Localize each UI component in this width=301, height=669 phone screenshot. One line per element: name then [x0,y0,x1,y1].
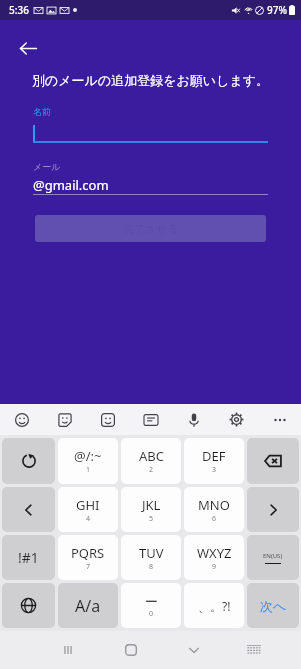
button[interactable]: Backspace [247,438,299,484]
button[interactable]: DEF [184,438,244,484]
button[interactable]: GIF [86,404,129,435]
staticText: 、。?! [198,598,231,614]
button[interactable]: Cursor right [247,487,299,532]
button[interactable]: 次へ [247,583,299,628]
staticText: 名前 [33,106,51,117]
staticText: 8 [149,562,154,572]
button[interactable]: JKL [121,487,181,532]
button[interactable]: WXYZ [184,535,244,580]
staticText: 1 [86,465,91,475]
button[interactable]: ー [121,583,181,628]
staticText: @/:~ [74,447,102,465]
button[interactable]: Undo [2,438,55,484]
button[interactable]: !#1 [2,535,55,580]
staticText: MNO [198,496,230,514]
staticText: GHI [76,496,100,514]
button[interactable]: Change language [2,583,55,628]
staticText: TUV [139,544,164,562]
staticText: !#1 [18,548,39,567]
button[interactable]: A/a [58,583,118,628]
staticText: 2 [149,465,154,475]
staticText: 0 [149,609,154,619]
button[interactable]: Cursor left [2,487,55,532]
staticText: 7 [86,562,91,572]
button[interactable]: Recents [36,631,99,669]
button[interactable]: MNO [184,487,244,532]
staticText: メール [33,161,61,172]
button[interactable]: @/:~ [58,438,118,484]
staticText: ABC [139,447,164,465]
button[interactable]: Stickers [43,404,86,435]
button[interactable] [33,122,268,141]
staticText: 4 [86,514,91,524]
button[interactable]: 、。?! [184,583,244,628]
button[interactable]: Settings [215,404,258,435]
staticText: EN(US) [263,552,283,560]
button[interactable]: More [258,404,301,435]
button[interactable]: Keyboard layout [225,631,282,669]
staticText: 5:36 [9,3,29,17]
staticText: DEF [202,447,226,465]
staticText: 別のメールの追加登録をお願いします。 [16,72,285,88]
button[interactable]: Emoji [0,404,43,435]
button[interactable]: Home [99,631,162,669]
staticText: JKL [142,496,161,514]
staticText: PQRS [71,544,105,562]
staticText: WXYZ [197,544,232,562]
staticText: 6 [212,514,217,524]
button[interactable]: PQRS [58,535,118,580]
staticText: 97% [267,3,287,17]
staticText: ー [145,593,158,609]
button[interactable]: Hide keyboard [162,631,225,669]
staticText: @gmail.com [33,176,109,194]
button[interactable]: Back [10,30,46,66]
staticText: 3 [212,465,217,475]
staticText: A/a [75,595,101,617]
button[interactable]: @gmail.com [33,176,268,194]
staticText: 9 [212,562,217,572]
button[interactable]: TUV [121,535,181,580]
staticText: 次へ [260,598,287,614]
button[interactable]: Text edit [129,404,172,435]
button[interactable]: Space [247,535,299,580]
button[interactable]: Voice input [172,404,215,435]
button[interactable]: GHI [58,487,118,532]
staticText: 5 [149,514,154,524]
button[interactable]: ABC [121,438,181,484]
